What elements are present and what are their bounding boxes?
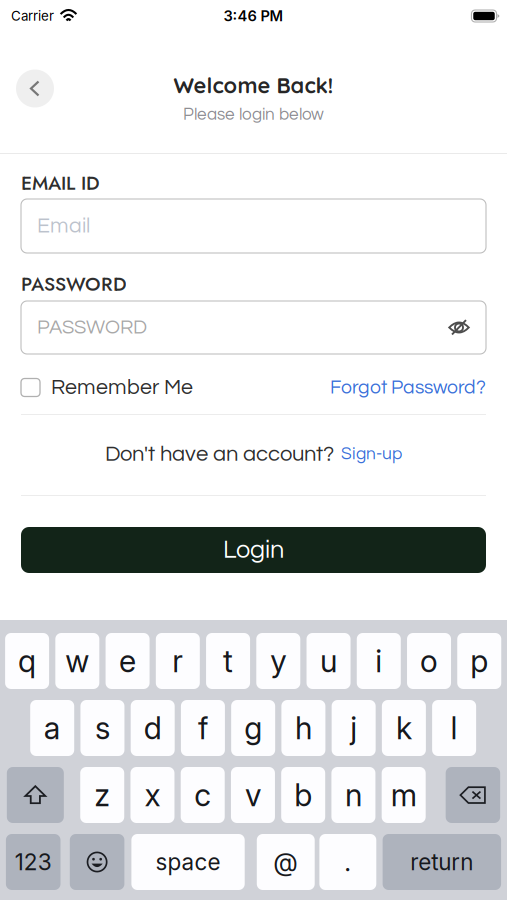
button[interactable]: j bbox=[332, 700, 376, 756]
staticText: n bbox=[345, 776, 362, 813]
button[interactable]: u bbox=[306, 633, 350, 689]
button[interactable]: d bbox=[131, 700, 175, 756]
staticText: a bbox=[44, 709, 61, 746]
button[interactable]: o bbox=[407, 633, 451, 689]
button[interactable]: Forgot Password? bbox=[330, 377, 486, 397]
staticText: Please login below bbox=[183, 106, 324, 123]
button[interactable]: @ bbox=[257, 834, 315, 890]
button[interactable]: k bbox=[382, 700, 426, 756]
staticText: o bbox=[420, 642, 438, 679]
staticText: u bbox=[320, 642, 337, 679]
staticText: j bbox=[350, 709, 357, 746]
staticText: @ bbox=[273, 847, 298, 877]
staticText: Carrier bbox=[11, 8, 54, 24]
staticText: 3:46 PM bbox=[223, 7, 283, 25]
button[interactable]: space bbox=[131, 834, 245, 890]
staticText: PASSWORD bbox=[21, 270, 127, 298]
staticText: Remember Me bbox=[51, 376, 193, 398]
staticText: s bbox=[95, 709, 110, 746]
button[interactable]: t bbox=[206, 633, 250, 689]
staticText: i bbox=[375, 642, 382, 679]
button[interactable]: p bbox=[457, 633, 501, 689]
staticText: EMAIL ID bbox=[21, 169, 100, 197]
button[interactable]: Remember Me bbox=[21, 376, 193, 398]
staticText: c bbox=[194, 776, 211, 813]
staticText: m bbox=[391, 776, 417, 813]
staticText: k bbox=[396, 709, 412, 746]
staticText: return bbox=[410, 848, 473, 876]
button[interactable]: r bbox=[156, 633, 200, 689]
button[interactable]: e bbox=[106, 633, 150, 689]
button[interactable]: z bbox=[80, 767, 124, 823]
staticText: PASSWORD bbox=[37, 317, 147, 338]
staticText: f bbox=[198, 709, 208, 746]
staticText: d bbox=[144, 709, 162, 746]
staticText: h bbox=[295, 709, 312, 746]
staticText: Login bbox=[223, 537, 284, 563]
staticText: Don't have an account? bbox=[105, 443, 334, 465]
button[interactable]: 123 bbox=[6, 834, 60, 890]
staticText: t bbox=[223, 642, 233, 679]
staticText: . bbox=[344, 847, 351, 877]
button[interactable]: y bbox=[256, 633, 300, 689]
button[interactable]: Shift bbox=[7, 767, 64, 823]
staticText: e bbox=[119, 642, 136, 679]
button[interactable]: return bbox=[383, 834, 501, 890]
staticText: z bbox=[94, 776, 110, 813]
staticText: space bbox=[156, 848, 221, 876]
button[interactable]: Delete bbox=[446, 767, 500, 823]
button[interactable]: q bbox=[5, 633, 49, 689]
staticText: 123 bbox=[15, 848, 52, 876]
staticText: q bbox=[18, 642, 36, 679]
button[interactable]: h bbox=[281, 700, 325, 756]
staticText: p bbox=[470, 642, 488, 679]
button[interactable]: Show password bbox=[448, 318, 470, 336]
button[interactable]: f bbox=[181, 700, 225, 756]
button[interactable]: x bbox=[130, 767, 174, 823]
button[interactable]: b bbox=[281, 767, 325, 823]
button[interactable]: l bbox=[432, 700, 476, 756]
button[interactable]: i bbox=[357, 633, 401, 689]
button[interactable]: Back bbox=[16, 69, 54, 107]
button[interactable]: g bbox=[231, 700, 275, 756]
staticText: b bbox=[294, 776, 312, 813]
staticText: y bbox=[270, 642, 286, 679]
staticText: g bbox=[244, 709, 262, 746]
button[interactable]: v bbox=[231, 767, 275, 823]
button[interactable]: m bbox=[382, 767, 426, 823]
staticText: Sign-up bbox=[341, 445, 402, 463]
button[interactable]: . bbox=[319, 834, 376, 890]
button[interactable]: w bbox=[55, 633, 99, 689]
staticText: Email bbox=[37, 215, 90, 237]
staticText: w bbox=[65, 642, 89, 679]
staticText: r bbox=[172, 642, 183, 679]
button[interactable]: c bbox=[181, 767, 225, 823]
button[interactable]: Emoji bbox=[70, 834, 124, 890]
button[interactable]: Sign-up bbox=[341, 445, 402, 463]
button[interactable]: s bbox=[80, 700, 124, 756]
staticText: l bbox=[451, 709, 458, 746]
staticText: x bbox=[144, 776, 160, 813]
staticText: v bbox=[245, 776, 261, 813]
button[interactable]: n bbox=[331, 767, 375, 823]
button[interactable]: a bbox=[30, 700, 74, 756]
staticText: Forgot Password? bbox=[330, 377, 486, 397]
button[interactable]: Login bbox=[21, 527, 486, 573]
staticText: Welcome Back! bbox=[173, 72, 333, 99]
